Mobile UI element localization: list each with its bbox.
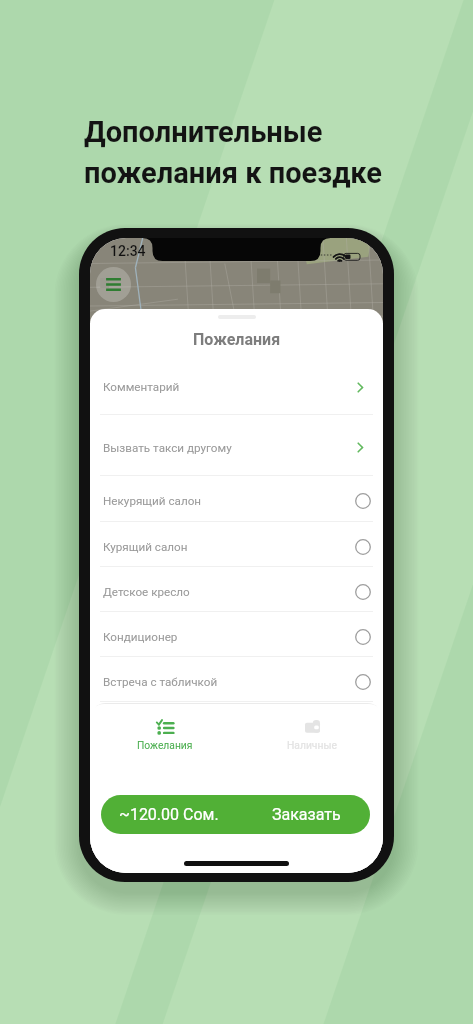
- button[interactable]: Наличные: [236, 704, 383, 766]
- staticText: Дополнительные: [84, 115, 323, 149]
- button[interactable]: Пожелания: [90, 704, 236, 766]
- button[interactable]: Комментарий: [90, 355, 383, 415]
- button[interactable]: Вызвать такси другому: [90, 415, 383, 476]
- staticText: Наличные: [287, 739, 337, 751]
- button[interactable]: Кондиционер: [90, 612, 383, 657]
- staticText: Вызвать такси другому: [103, 441, 232, 455]
- staticText: Пожелания: [193, 330, 281, 349]
- button[interactable]: ~120.00 Сом.: [101, 795, 370, 834]
- staticText: Пожелания: [137, 739, 193, 751]
- button[interactable]: Встреча с табличкой: [90, 657, 383, 702]
- staticText: 12:34: [110, 243, 146, 259]
- button[interactable]: Некурящий салон: [90, 476, 383, 522]
- staticText: Заказать: [272, 805, 341, 824]
- staticText: Курящий салон: [103, 540, 188, 554]
- staticText: ~120.00 Сом.: [119, 805, 219, 824]
- staticText: Кондиционер: [103, 630, 178, 644]
- button[interactable]: Детское кресло: [90, 567, 383, 612]
- button[interactable]: Menu: [96, 267, 131, 302]
- staticText: Встреча с табличкой: [103, 675, 218, 689]
- staticText: Детское кресло: [103, 585, 190, 599]
- staticText: пожелания к поездке: [84, 156, 383, 190]
- staticText: Комментарий: [103, 380, 180, 394]
- button[interactable]: Курящий салон: [90, 522, 383, 567]
- staticText: Некурящий салон: [103, 494, 202, 508]
